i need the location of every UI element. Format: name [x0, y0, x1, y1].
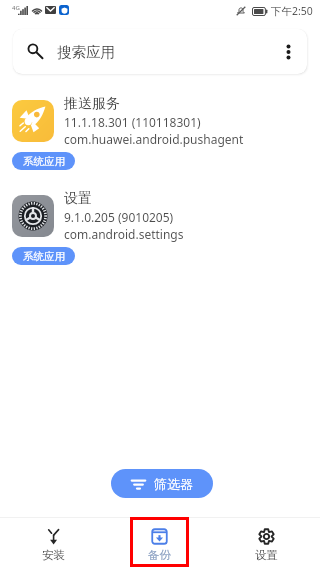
staticText: 备份: [148, 548, 171, 562]
staticText: 设置: [64, 190, 92, 208]
button[interactable]: 设置: [0, 191, 320, 269]
button[interactable]: More options: [272, 29, 303, 74]
button[interactable]: 安装: [0, 517, 106, 568]
staticText: com.huawei.android.pushagent: [64, 131, 244, 147]
staticText: 11.1.18.301 (110118301): [64, 114, 201, 130]
button[interactable]: 系统应用: [12, 152, 75, 170]
staticText: 搜索应用: [57, 43, 115, 61]
staticText: 系统应用: [23, 155, 65, 168]
staticText: 4G: [12, 4, 20, 12]
staticText: 设置: [255, 548, 278, 562]
staticText: 系统应用: [23, 250, 65, 263]
button[interactable]: 备份: [106, 517, 213, 568]
button[interactable]: 搜索应用: [13, 29, 307, 74]
staticText: com.android.settings: [64, 226, 184, 242]
staticText: 筛选器: [154, 476, 193, 492]
staticText: 安装: [42, 548, 65, 562]
staticText: 推送服务: [64, 95, 120, 113]
button[interactable]: 系统应用: [12, 247, 75, 265]
staticText: 9.1.0.205 (9010205): [64, 209, 174, 225]
button[interactable]: 设置: [213, 517, 320, 568]
button[interactable]: 推送服务: [0, 96, 320, 174]
staticText: 下午2:50: [271, 4, 313, 18]
button[interactable]: 筛选器: [111, 469, 213, 498]
